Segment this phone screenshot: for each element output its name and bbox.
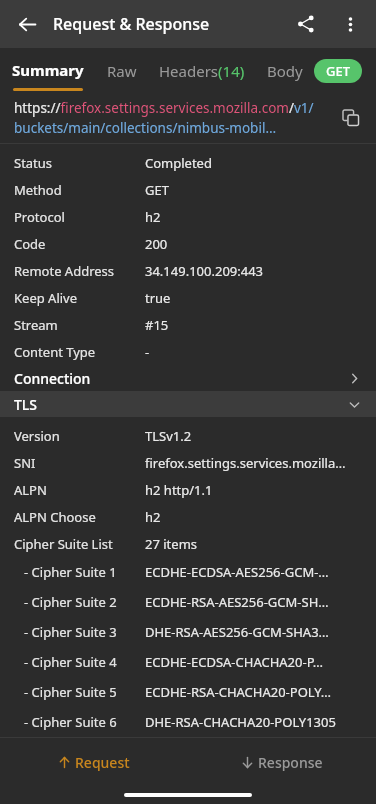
staticText: SNI <box>14 454 145 472</box>
staticText: Request & Response <box>53 13 284 35</box>
staticText: true <box>145 289 364 307</box>
button[interactable]: Stream <box>0 311 376 338</box>
staticText: TLSv1.2 <box>145 427 364 445</box>
button[interactable]: - Cipher Suite 5 <box>0 677 376 707</box>
button[interactable]: Method <box>0 176 376 203</box>
button[interactable]: GET <box>314 59 362 83</box>
staticText: 34.149.100.209:443 <box>145 262 364 280</box>
button[interactable]: - Cipher Suite 1 <box>0 557 376 587</box>
button[interactable]: Connection <box>0 365 376 391</box>
staticText: Content Type <box>14 343 145 361</box>
staticText: Summary <box>12 60 84 80</box>
staticText: GET <box>326 62 350 80</box>
staticText: Raw <box>107 61 137 81</box>
staticText: Completed <box>145 154 364 172</box>
staticText: ECDHE-ECDSA-AES256-GCM-… <box>145 563 364 581</box>
staticText: Method <box>14 181 145 199</box>
staticText: - <box>145 343 364 361</box>
staticText: ECDHE-ECDSA-CHACHA20-P… <box>145 653 364 671</box>
button[interactable]: More options <box>328 2 372 46</box>
staticText: Body <box>267 61 303 81</box>
button[interactable]: Remote Address <box>0 257 376 284</box>
button[interactable]: Keep Alive <box>0 284 376 311</box>
staticText: Stream <box>14 316 145 334</box>
staticText: - Cipher Suite 3 <box>24 623 145 641</box>
staticText: Code <box>14 235 145 253</box>
button[interactable]: - Cipher Suite 4 <box>0 647 376 677</box>
staticText: Response <box>258 753 323 772</box>
staticText: Headers(14) <box>159 61 245 81</box>
staticText: https://firefox.settings.services.mozill… <box>14 99 332 137</box>
staticText: 200 <box>145 235 364 253</box>
button[interactable]: TLS <box>0 391 376 417</box>
button[interactable]: Share <box>284 2 328 46</box>
staticText: Version <box>14 427 145 445</box>
staticText: h2 <box>145 208 364 226</box>
staticText: ECDHE-RSA-CHACHA20-POLY… <box>145 683 364 701</box>
button[interactable]: Headers(14) <box>148 48 256 93</box>
staticText: ALPN Choose <box>14 508 145 526</box>
staticText: - Cipher Suite 5 <box>24 683 145 701</box>
button[interactable]: Raw <box>96 48 148 93</box>
staticText: - Cipher Suite 6 <box>24 713 145 731</box>
button[interactable]: Copy URL <box>332 99 370 137</box>
button[interactable]: Body <box>256 48 314 93</box>
button[interactable]: Response <box>188 738 376 786</box>
button[interactable]: Request <box>0 738 188 786</box>
staticText: - Cipher Suite 2 <box>24 593 145 611</box>
staticText: h2 http/1.1 <box>145 481 364 499</box>
staticText: DHE-RSA-AES256-GCM-SHA3… <box>145 623 364 641</box>
staticText: Cipher Suite List <box>14 535 145 553</box>
button[interactable]: - Cipher Suite 2 <box>0 587 376 617</box>
button[interactable]: Summary <box>0 48 96 93</box>
button[interactable]: ALPN Choose <box>0 503 376 530</box>
staticText: Keep Alive <box>14 289 145 307</box>
staticText: - Cipher Suite 1 <box>24 563 145 581</box>
staticText: ECDHE-RSA-AES256-GCM-SH… <box>145 593 364 611</box>
staticText: Status <box>14 154 145 172</box>
staticText: ALPN <box>14 481 145 499</box>
button[interactable]: - Cipher Suite 6 <box>0 707 376 737</box>
staticText: h2 <box>145 508 364 526</box>
button[interactable]: Cipher Suite List <box>0 530 376 557</box>
staticText: DHE-RSA-CHACHA20-POLY1305 <box>145 713 364 731</box>
button[interactable]: Back <box>6 3 48 45</box>
button[interactable]: - Cipher Suite 3 <box>0 617 376 647</box>
button[interactable]: ALPN <box>0 476 376 503</box>
staticText: Connection <box>14 369 347 388</box>
button[interactable]: Content Type <box>0 338 376 365</box>
staticText: GET <box>145 181 364 199</box>
staticText: Protocol <box>14 208 145 226</box>
staticText: TLS <box>14 395 347 414</box>
staticText: Remote Address <box>14 262 145 280</box>
button[interactable]: SNI <box>0 449 376 476</box>
staticText: firefox.settings.services.mozilla… <box>145 454 364 472</box>
button[interactable]: Protocol <box>0 203 376 230</box>
staticText: 27 items <box>145 535 364 553</box>
button[interactable]: Version <box>0 422 376 449</box>
button[interactable]: Code <box>0 230 376 257</box>
button[interactable]: Status <box>0 149 376 176</box>
staticText: - Cipher Suite 4 <box>24 653 145 671</box>
staticText: #15 <box>145 316 364 334</box>
staticText: Request <box>75 753 130 772</box>
